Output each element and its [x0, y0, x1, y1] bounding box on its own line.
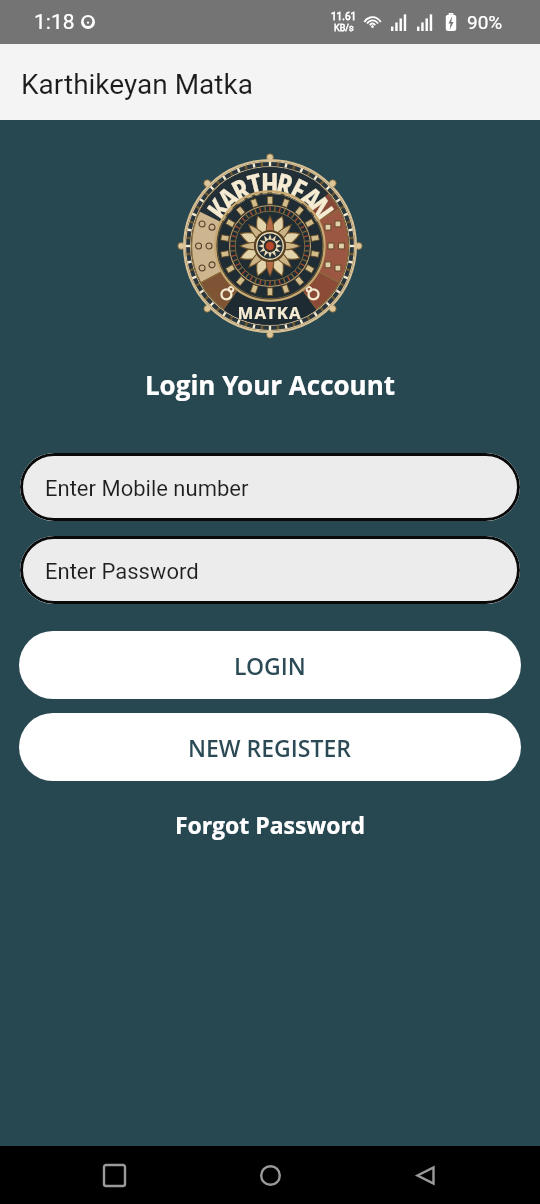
button[interactable]: Enter Mobile number — [20, 453, 520, 521]
other: App notification — [81, 15, 95, 29]
button[interactable]: Back — [402, 1151, 450, 1199]
button[interactable]: Recent apps — [90, 1151, 138, 1199]
staticText: Forgot Password — [175, 809, 365, 840]
button[interactable]: Home — [246, 1151, 294, 1199]
staticText: 1:18 — [34, 10, 75, 35]
staticText: 90% — [467, 11, 503, 33]
button[interactable]: Forgot Password — [167, 807, 373, 842]
button[interactable]: Enter Password — [20, 536, 520, 604]
staticText: NEW REGISTER — [188, 732, 352, 763]
staticText: LOGIN — [234, 650, 306, 681]
button[interactable]: LOGIN — [19, 631, 521, 699]
staticText: Karthikeyan Matka — [21, 68, 253, 101]
button[interactable]: NEW REGISTER — [19, 713, 521, 781]
staticText: KB/s — [334, 23, 354, 34]
staticText: Login Your Account — [0, 367, 540, 402]
staticText: Enter Password — [45, 559, 199, 585]
staticText: 11.61 — [331, 11, 357, 23]
staticText: Enter Mobile number — [45, 476, 249, 502]
